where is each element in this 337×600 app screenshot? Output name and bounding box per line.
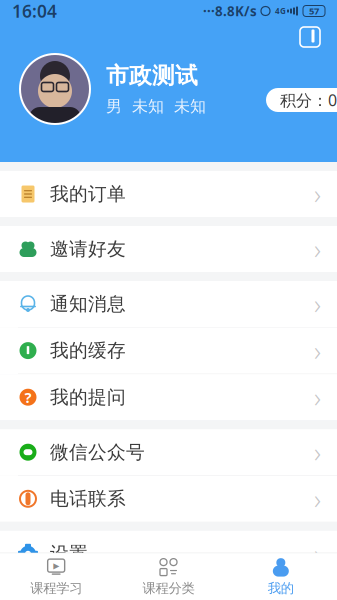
staticText: › — [314, 176, 321, 212]
button[interactable]: 微信公众号 — [0, 429, 337, 476]
staticText: 57 — [309, 5, 319, 17]
button[interactable]: 编辑资料 — [297, 22, 337, 50]
staticText: › — [314, 379, 321, 415]
staticText: 16:04 — [12, 0, 57, 22]
staticText: › — [314, 333, 321, 368]
staticText: 邀请好友 — [50, 237, 126, 260]
staticText: › — [314, 231, 321, 267]
button[interactable]: 我的缓存 — [0, 328, 337, 374]
staticText: › — [314, 481, 321, 516]
staticText: 微信公众号 — [50, 441, 145, 464]
staticText: ▶ — [53, 561, 59, 570]
button[interactable]: ? — [0, 374, 337, 420]
staticText: 男 未知 未知 — [106, 97, 206, 116]
staticText: 课程分类 — [142, 580, 194, 596]
staticText: 我的缓存 — [50, 339, 126, 362]
button[interactable]: 课程分类 — [112, 553, 225, 600]
staticText: 课程学习 — [30, 580, 82, 596]
button[interactable]: 邀请好友 — [0, 226, 337, 272]
staticText: 我的订单 — [50, 182, 126, 205]
staticText: 我的 — [268, 580, 294, 596]
staticText: 积分：0 — [280, 89, 337, 111]
staticText: 通知消息 — [50, 292, 126, 315]
staticText: 设置 — [50, 542, 88, 565]
staticText: › — [314, 286, 321, 322]
staticText: 我的提问 — [50, 386, 126, 409]
button[interactable]: 通知消息 — [0, 281, 337, 328]
button[interactable]: 设置 — [0, 531, 337, 577]
staticText: › — [314, 434, 321, 470]
button[interactable]: 我的订单 — [0, 171, 337, 217]
button[interactable]: ▶ — [0, 553, 112, 600]
staticText: ···8.8K/s — [203, 2, 257, 20]
staticText: ? — [24, 387, 31, 407]
staticText: 电话联系 — [50, 487, 126, 510]
staticText: › — [314, 536, 321, 571]
staticText: 4G — [275, 6, 286, 16]
button[interactable]: 电话联系 — [0, 476, 337, 522]
button[interactable]: 我的 — [225, 553, 337, 600]
staticText: 市政测试 — [106, 62, 198, 90]
